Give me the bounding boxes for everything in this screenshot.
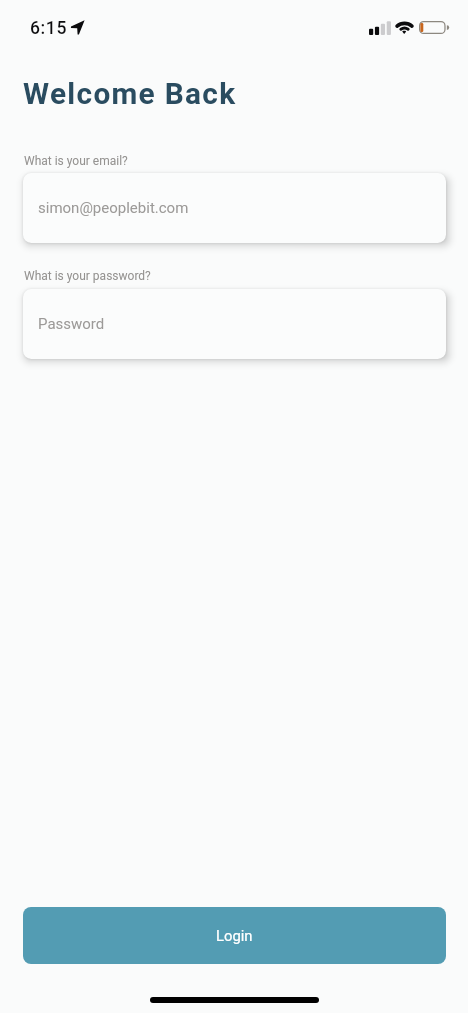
staticText: 6:15 bbox=[30, 18, 68, 39]
staticText: Password bbox=[38, 315, 105, 333]
staticText: Welcome Back bbox=[23, 76, 237, 111]
staticText: simon@peoplebit.com bbox=[38, 199, 189, 217]
other: Cellular signal bbox=[369, 21, 391, 35]
button[interactable]: Login bbox=[23, 907, 446, 964]
other: Battery low bbox=[419, 21, 448, 34]
staticText: Login bbox=[216, 927, 253, 944]
staticText: What is your password? bbox=[24, 269, 151, 283]
other: Wi-Fi connected bbox=[393, 18, 416, 36]
other: Location services active bbox=[70, 19, 87, 36]
staticText: What is your email? bbox=[24, 154, 128, 168]
button[interactable]: Password bbox=[23, 289, 446, 359]
button[interactable]: simon@peoplebit.com bbox=[23, 173, 446, 243]
